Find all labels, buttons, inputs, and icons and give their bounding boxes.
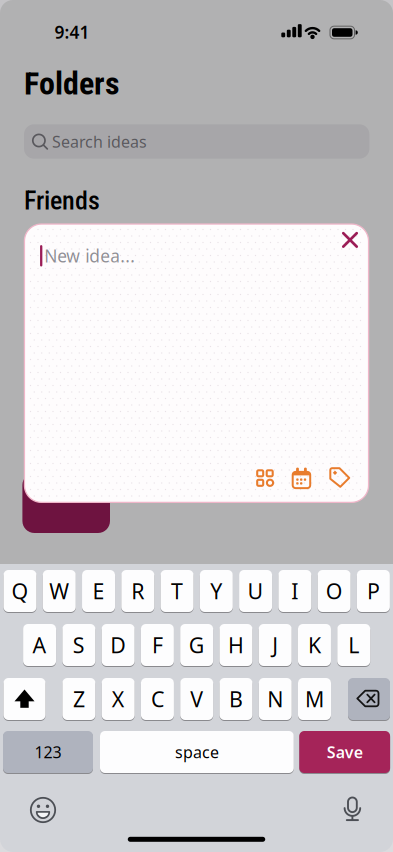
button[interactable]: K xyxy=(298,624,331,666)
button[interactable]: Emoji xyxy=(28,795,58,825)
button[interactable]: X xyxy=(102,678,135,720)
button[interactable]: T xyxy=(161,570,194,612)
button[interactable]: C xyxy=(141,678,174,720)
button[interactable]: Y xyxy=(200,570,233,612)
staticText: N xyxy=(267,685,283,713)
button[interactable]: P xyxy=(357,570,390,612)
staticText: F xyxy=(152,631,163,659)
button[interactable]: Shift xyxy=(3,678,45,720)
staticText: K xyxy=(308,631,321,659)
staticText: D xyxy=(110,631,126,659)
staticText: Save xyxy=(327,741,363,763)
button[interactable]: H xyxy=(219,624,252,666)
button[interactable]: J xyxy=(259,624,292,666)
button[interactable]: space xyxy=(100,731,294,773)
staticText: B xyxy=(229,685,243,713)
button[interactable]: S xyxy=(62,624,95,666)
staticText: H xyxy=(228,631,244,659)
staticText: M xyxy=(305,685,324,713)
button[interactable]: I xyxy=(278,570,311,612)
staticText: Y xyxy=(210,577,222,605)
button[interactable]: G xyxy=(180,624,213,666)
button[interactable]: Tags xyxy=(324,462,354,492)
button[interactable]: B xyxy=(219,678,252,720)
staticText: J xyxy=(272,631,278,659)
staticText: L xyxy=(348,631,359,659)
button[interactable]: U xyxy=(239,570,272,612)
button[interactable]: Search ideas xyxy=(24,124,369,159)
staticText: C xyxy=(151,685,164,713)
staticText: Friends xyxy=(24,185,100,216)
button[interactable]: R xyxy=(121,570,154,612)
staticText: G xyxy=(189,631,205,659)
button[interactable]: Close xyxy=(335,225,365,255)
button[interactable]: D xyxy=(102,624,135,666)
button[interactable]: L xyxy=(337,624,370,666)
button[interactable]: Dictate xyxy=(337,795,367,825)
button[interactable]: Delete xyxy=(348,678,390,720)
staticText: space xyxy=(175,741,219,763)
staticText: 123 xyxy=(34,741,61,763)
staticText: A xyxy=(33,631,47,659)
staticText: T xyxy=(171,577,183,605)
button[interactable]: 123 xyxy=(3,731,93,773)
button[interactable]: Q xyxy=(3,570,36,612)
staticText: Folders xyxy=(24,65,120,102)
staticText: W xyxy=(49,577,69,605)
staticText: Q xyxy=(11,577,28,605)
staticText: New idea... xyxy=(44,244,135,267)
staticText: 9:41 xyxy=(54,20,89,43)
button[interactable]: W xyxy=(43,570,76,612)
button[interactable]: V xyxy=(180,678,213,720)
button[interactable]: O xyxy=(318,570,351,612)
staticText: S xyxy=(73,631,85,659)
button[interactable]: Z xyxy=(62,678,95,720)
button[interactable]: E xyxy=(82,570,115,612)
button[interactable]: Schedule xyxy=(286,463,316,493)
staticText: Search ideas xyxy=(52,131,147,152)
button[interactable]: F xyxy=(141,624,174,666)
button[interactable]: M xyxy=(298,678,331,720)
button[interactable]: A xyxy=(23,624,56,666)
staticText: E xyxy=(92,577,104,605)
staticText: P xyxy=(367,577,380,605)
staticText: V xyxy=(190,685,203,713)
staticText: O xyxy=(326,577,343,605)
staticText: U xyxy=(248,577,264,605)
button[interactable]: N xyxy=(259,678,292,720)
staticText: X xyxy=(112,685,125,713)
button[interactable]: Categories xyxy=(250,463,280,493)
staticText: Z xyxy=(73,685,85,713)
staticText: I xyxy=(291,577,298,605)
staticText: R xyxy=(131,577,144,605)
button[interactable]: Save xyxy=(299,731,390,773)
